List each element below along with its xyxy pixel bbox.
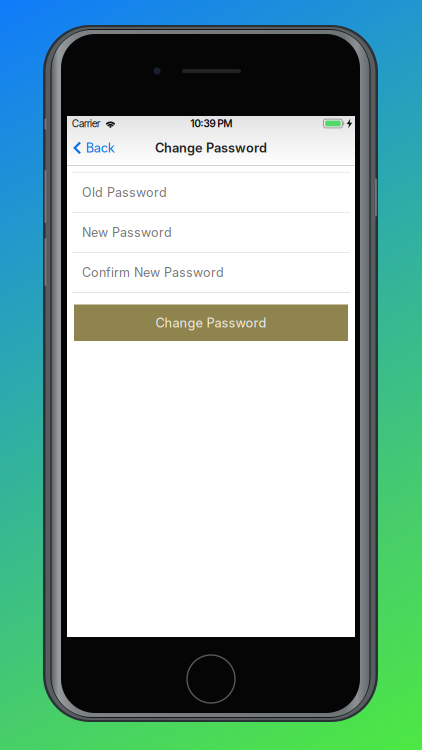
button[interactable]: New Password	[67, 213, 355, 252]
button[interactable]: Back	[67, 133, 123, 163]
staticText: 10:39 PM	[190, 117, 232, 130]
staticText: Change Password	[155, 140, 267, 156]
button[interactable]: Confirm New Password	[67, 253, 355, 292]
button[interactable]: Change Password	[74, 304, 348, 341]
staticText: Old Password	[82, 185, 167, 200]
staticText: Carrier	[72, 117, 100, 130]
staticText: Change Password	[155, 315, 266, 330]
button[interactable]: Old Password	[67, 173, 355, 212]
staticText: Confirm New Password	[82, 265, 224, 280]
staticText: New Password	[82, 225, 172, 240]
staticText: Back	[86, 140, 115, 156]
